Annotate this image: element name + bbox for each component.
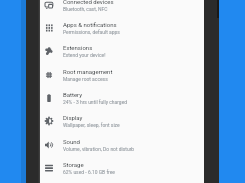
- staticText: Battery: [63, 91, 83, 98]
- staticText: Extend your device!: [63, 52, 106, 58]
- button[interactable]: Connected devices: [40, 0, 204, 16]
- staticText: Manage root access: [63, 76, 108, 82]
- button[interactable]: Root management: [40, 63, 204, 86]
- staticText: Apps & notifications: [63, 21, 117, 28]
- button[interactable]: Sound: [40, 133, 204, 156]
- button[interactable]: Display: [40, 109, 204, 132]
- staticText: Bluetooth, cast, NFC: [63, 6, 108, 12]
- staticText: 24% - 3 hrs until fully charged: [63, 99, 128, 105]
- staticText: Sound: [63, 138, 80, 145]
- button[interactable]: Apps & notifications: [40, 16, 204, 39]
- staticText: Root management: [63, 68, 113, 75]
- button[interactable]: Storage: [40, 156, 204, 179]
- staticText: Wallpaper, sleep, font size: [63, 122, 120, 128]
- staticText: Storage: [63, 161, 84, 168]
- staticText: Connected devices: [63, 0, 114, 5]
- staticText: 62% used - 6.10 GB free: [63, 169, 115, 175]
- staticText: Display: [63, 114, 83, 121]
- staticText: Volume, vibration, Do not disturb: [63, 146, 135, 152]
- staticText: Permissions, default apps: [63, 29, 120, 35]
- staticText: Extensions: [63, 44, 93, 51]
- button[interactable]: Battery: [40, 86, 204, 109]
- button[interactable]: Extensions: [40, 39, 204, 62]
